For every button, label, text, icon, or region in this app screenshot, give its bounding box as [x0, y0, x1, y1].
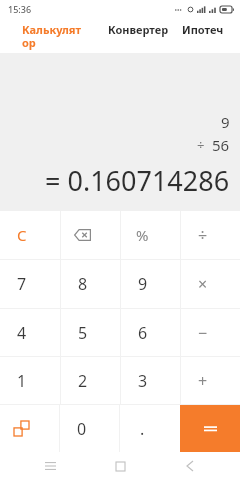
button[interactable]: ÷: [181, 211, 240, 259]
button[interactable]: %: [121, 211, 180, 259]
button[interactable]: Калькулятор: [22, 22, 86, 50]
button[interactable]: Clear: [0, 211, 60, 259]
button[interactable]: 7: [0, 260, 60, 308]
button[interactable]: 6: [121, 309, 180, 356]
button[interactable]: Back: [155, 452, 225, 480]
button[interactable]: ×: [181, 260, 240, 308]
staticText: Калькулятор: [22, 22, 86, 50]
staticText: 7: [17, 273, 27, 295]
button[interactable]: 2: [61, 357, 120, 404]
staticText: 4: [17, 322, 27, 344]
button[interactable]: 9: [121, 260, 180, 308]
staticText: 6: [138, 322, 148, 344]
button[interactable]: Home: [85, 452, 155, 480]
staticText: Ипотеч: [182, 22, 224, 37]
button[interactable]: Recents: [15, 452, 85, 480]
staticText: 15:36: [8, 3, 32, 15]
button[interactable]: Converter: [0, 405, 59, 452]
button[interactable]: 0: [60, 405, 119, 452]
staticText: 2: [78, 370, 88, 392]
staticText: %: [136, 225, 149, 245]
button[interactable]: −: [181, 309, 240, 356]
button[interactable]: .: [120, 405, 180, 452]
staticText: .: [140, 418, 145, 440]
staticText: 9: [138, 273, 148, 295]
staticText: 3: [138, 370, 148, 392]
staticText: 8: [78, 273, 88, 295]
staticText: ÷: [198, 224, 208, 246]
staticText: 9: [221, 112, 230, 132]
staticText: 1: [17, 370, 27, 392]
staticText: 0: [77, 418, 87, 440]
button[interactable]: 3: [121, 357, 180, 404]
button[interactable]: +: [181, 357, 240, 404]
button[interactable]: Backspace: [61, 211, 120, 259]
staticText: 56: [212, 135, 230, 155]
button[interactable]: 5: [61, 309, 120, 356]
button[interactable]: 8: [61, 260, 120, 308]
button[interactable]: Конвертер: [108, 22, 169, 37]
button[interactable]: Ипотеч: [182, 22, 224, 37]
button[interactable]: 4: [0, 309, 60, 356]
staticText: ÷: [197, 136, 205, 154]
staticText: C: [17, 225, 27, 245]
button[interactable]: 1: [0, 357, 60, 404]
staticText: +: [198, 370, 208, 392]
staticText: −: [198, 322, 208, 344]
staticText: Конвертер: [108, 22, 169, 37]
staticText: ×: [198, 273, 208, 295]
staticText: = 0.160714286: [45, 162, 230, 199]
button[interactable]: Equals: [180, 405, 240, 452]
staticText: 5: [78, 322, 88, 344]
